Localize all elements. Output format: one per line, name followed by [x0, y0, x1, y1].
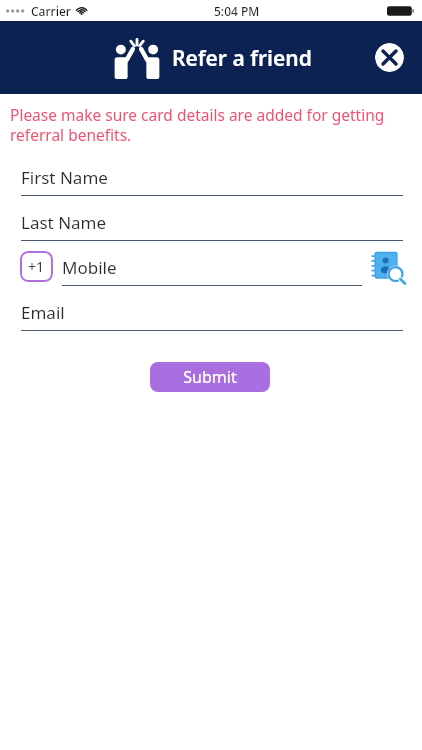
staticText: Please make sure card details are added … [10, 104, 392, 146]
staticText: Carrier [31, 3, 71, 19]
button[interactable]: Pick from contacts [371, 251, 406, 284]
button[interactable]: Mobile [62, 250, 362, 295]
staticText: Refer a friend [172, 44, 312, 73]
staticText: Submit [183, 366, 237, 388]
staticText: +1 [28, 257, 45, 276]
staticText: Last Name [21, 211, 107, 234]
button[interactable]: First Name [0, 160, 422, 205]
button[interactable]: Submit [150, 362, 270, 392]
staticText: Mobile [62, 256, 117, 279]
staticText: First Name [21, 166, 108, 189]
button[interactable]: Email [0, 295, 422, 340]
button[interactable]: +1 [20, 251, 53, 282]
staticText: 5:04 PM [214, 3, 260, 19]
button[interactable]: Last Name [0, 205, 422, 250]
staticText: Email [21, 301, 65, 324]
button[interactable]: Close [375, 43, 404, 72]
